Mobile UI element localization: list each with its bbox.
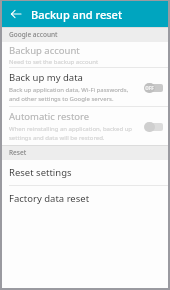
staticText: Back up application data, Wi-Fi password… [9,86,129,94]
staticText: Need to set the backup account [9,58,99,66]
staticText: Automatic restore [9,110,90,123]
staticText: and other settings to Google servers. [9,95,114,103]
staticText: Back up my data [9,71,83,84]
button[interactable]: Backup account [2,42,168,67]
staticText: OFF [145,85,154,91]
button[interactable]: Reset settings [2,160,168,185]
button[interactable]: Toggle [144,121,163,132]
staticText: Backup and reset [31,7,123,22]
button[interactable]: Back up my data [2,68,168,106]
staticText: When reinstalling an application, backed… [9,125,133,133]
button[interactable]: Factory data reset [2,186,168,211]
staticText: Factory data reset [9,192,90,205]
button[interactable]: Back [6,4,26,24]
button[interactable]: Automatic restore [2,107,168,145]
staticText: Google account [9,30,58,39]
staticText: settings and data will be restored. [9,134,105,142]
staticText: Reset [9,148,27,157]
staticText: Reset settings [9,166,72,179]
staticText: Backup account [9,44,80,57]
button[interactable]: Toggle [144,82,163,93]
